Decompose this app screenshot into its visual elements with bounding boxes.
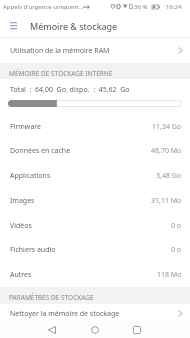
button[interactable]: Back (37, 322, 67, 337)
button[interactable]: Utilisation de la mémoire RAM (0, 38, 190, 63)
button[interactable]: Autres (0, 262, 190, 287)
staticText: Images (10, 196, 35, 206)
staticText: Firmware (10, 122, 42, 132)
button[interactable]: Firmware (0, 114, 190, 139)
button[interactable]: Home (80, 322, 110, 337)
staticText: Nettoyer la mémoire de stockage (10, 309, 120, 319)
button[interactable]: Recent apps (122, 322, 152, 337)
staticText: 31,11 Mo (151, 196, 182, 206)
button[interactable]: Menu (0, 13, 26, 38)
button[interactable]: Images (0, 188, 190, 213)
staticText: Autres (10, 270, 32, 280)
staticText: Total : 64,00 Go, dispo. : 45,62 Go (10, 85, 130, 95)
staticText: 16:24 (166, 3, 182, 11)
staticText: 118 Mo (157, 270, 182, 280)
staticText: MÉMOIRE DE STOCKAGE INTERNE (9, 69, 113, 78)
staticText: 0 o (171, 221, 182, 231)
staticText: Utilisation de la mémoire RAM (10, 46, 110, 56)
staticText: PARAMÈTRES DE STOCKAGE (9, 293, 94, 302)
staticText: 36 % (134, 3, 148, 11)
button[interactable]: Applications (0, 163, 190, 188)
staticText: 3,48 Go (156, 171, 182, 181)
button[interactable]: Fichiers audio (0, 238, 190, 262)
staticText: Fichiers audio (10, 245, 56, 255)
staticText: Applications (10, 171, 51, 181)
staticText: 48,70 Mo (151, 146, 182, 156)
staticText: 0 o (171, 245, 182, 255)
button[interactable]: Nettoyer la mémoire de stockage (0, 304, 190, 323)
button[interactable]: Vidéos (0, 213, 190, 238)
staticText: Données en cache (10, 146, 71, 156)
staticText: 11,34 Go (152, 122, 182, 132)
staticText: Mémoire & stockage (30, 20, 118, 32)
staticText: Appels d'urgence uniquem... (3, 3, 84, 11)
staticText: Vidéos (10, 221, 32, 231)
button[interactable]: Données en cache (0, 139, 190, 163)
